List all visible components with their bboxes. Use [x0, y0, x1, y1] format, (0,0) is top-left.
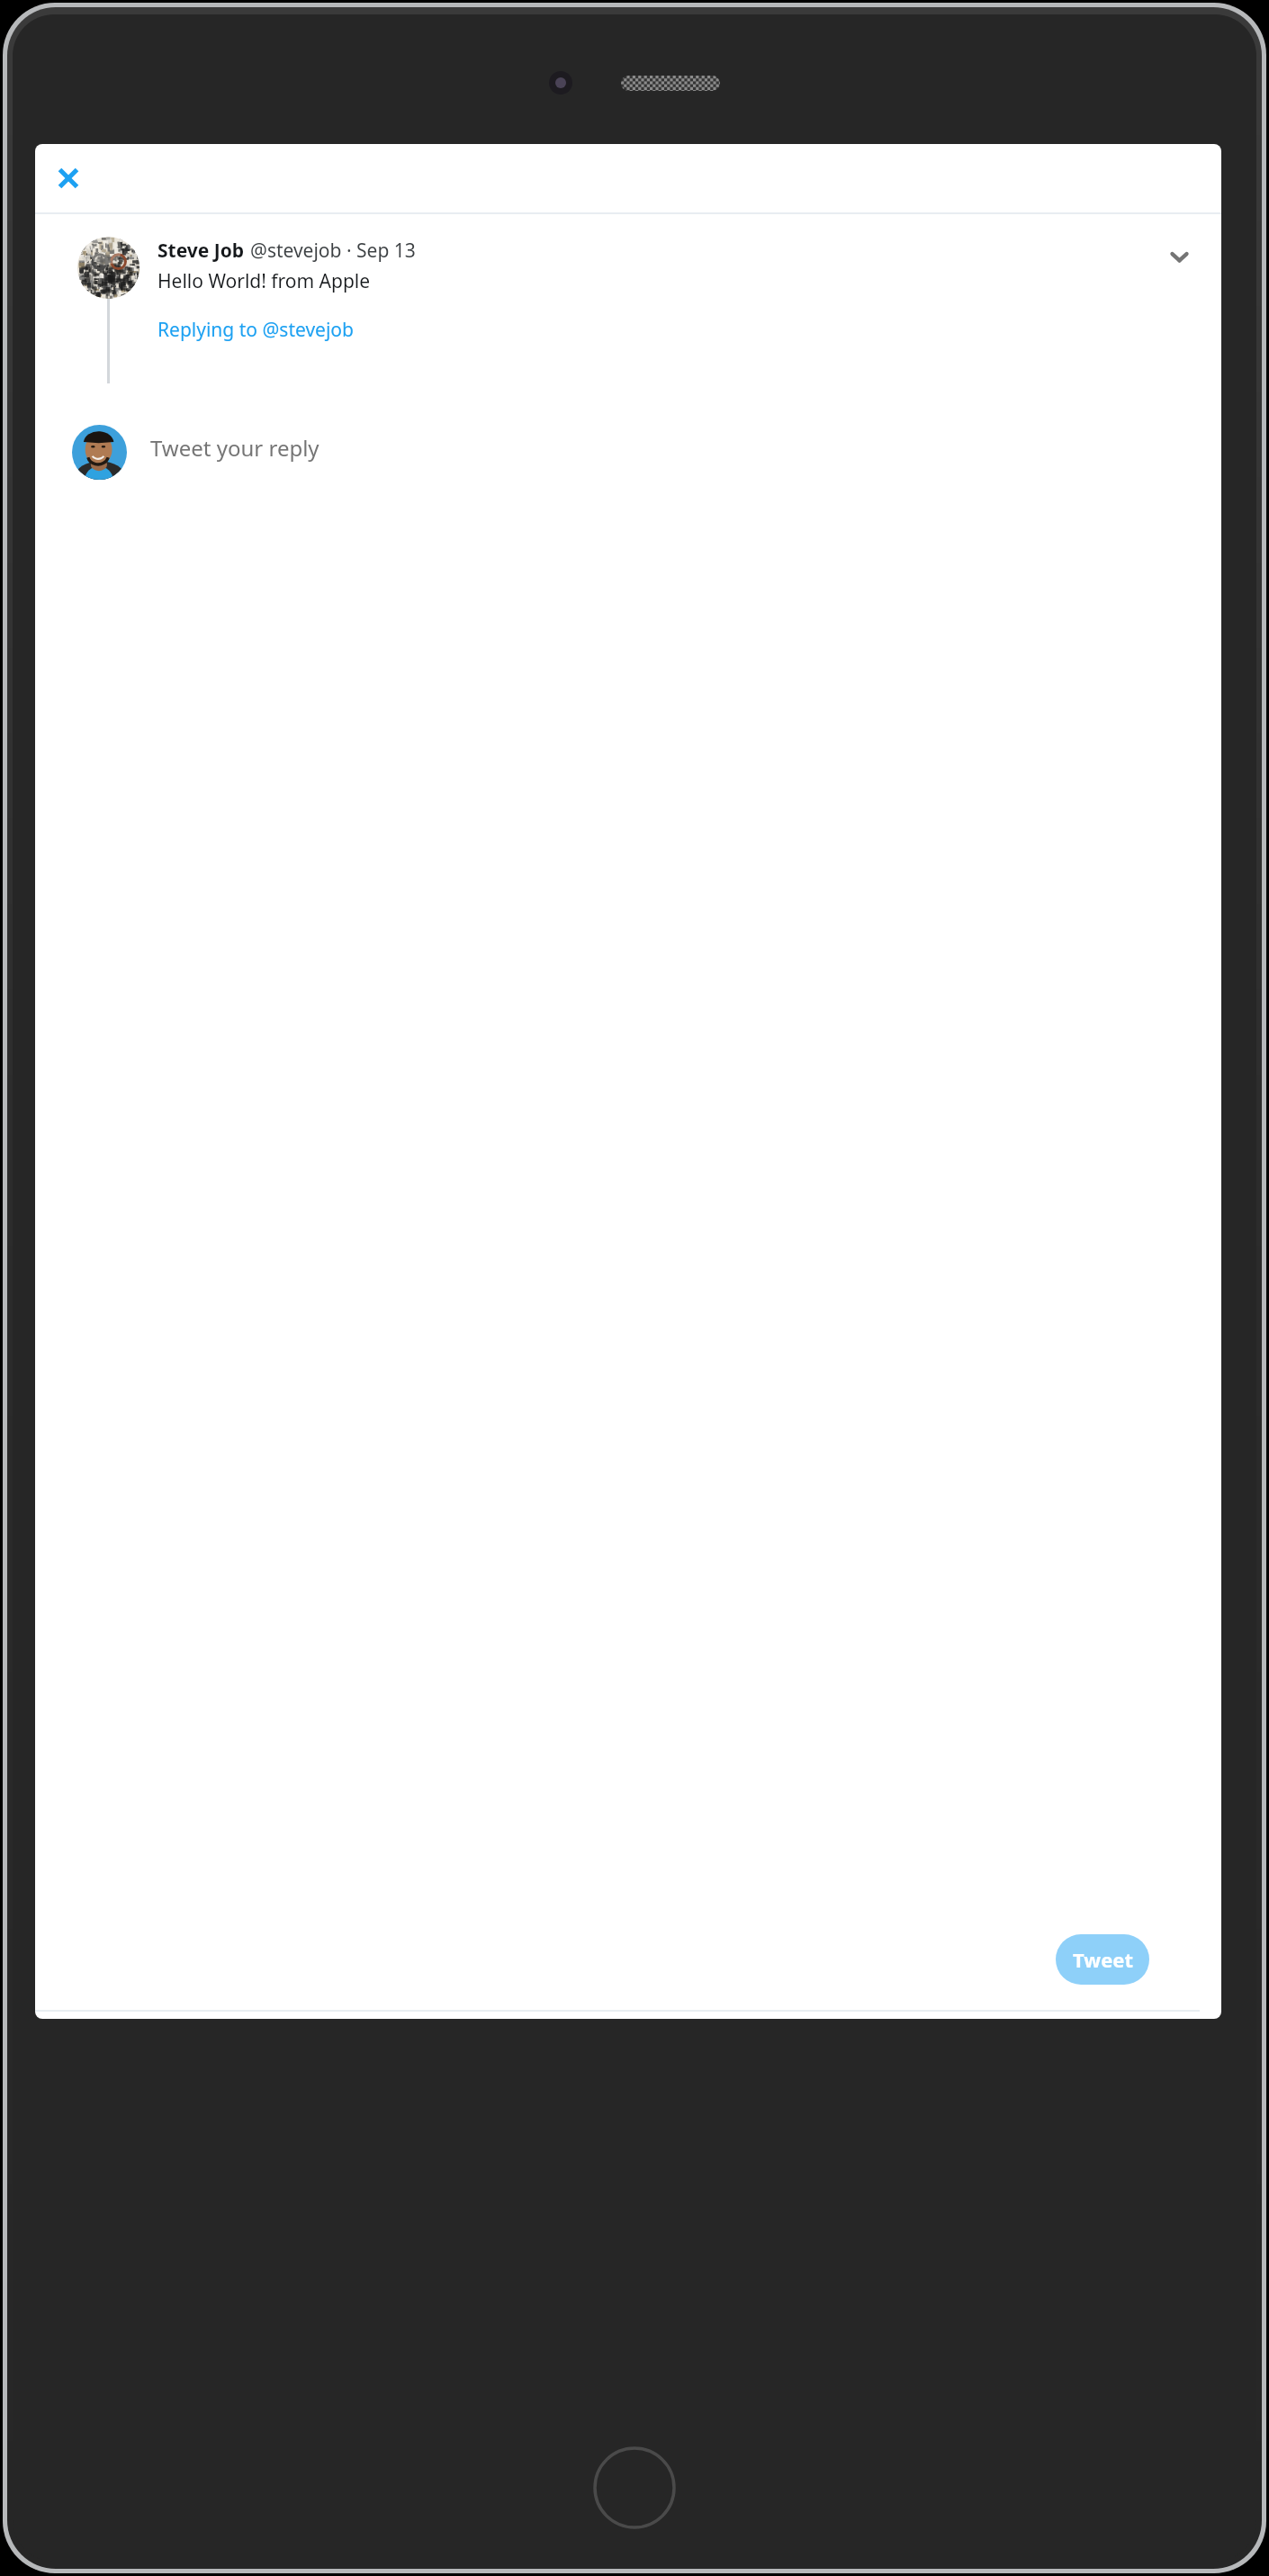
staticText: Tweet: [1073, 1946, 1133, 1973]
button[interactable]: Tweet your reply: [150, 433, 319, 463]
staticText: Steve Job: [157, 238, 245, 264]
staticText: @stevejob · Sep 13: [250, 238, 416, 264]
button[interactable]: Tweet: [1056, 1934, 1149, 1985]
button[interactable]: Close: [50, 160, 86, 196]
staticText: Hello World! from Apple: [157, 268, 371, 294]
button[interactable]: More options: [1164, 241, 1194, 272]
button[interactable]: Replying to @stevejob: [157, 317, 354, 343]
